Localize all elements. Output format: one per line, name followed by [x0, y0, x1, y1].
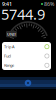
button[interactable]: Record: [22, 77, 34, 89]
staticText: Range: [4, 63, 14, 68]
staticText: Fuel: [4, 53, 11, 59]
staticText: 86%: [44, 0, 54, 8]
staticText: 5744.9: [1, 4, 45, 24]
staticText: Trip A: [4, 44, 15, 49]
staticText: UNIT: [7, 31, 16, 37]
staticText: 9:41: [2, 0, 12, 8]
button[interactable]: Fuel: [2, 51, 51, 61]
button[interactable]: Range: [2, 61, 51, 70]
button[interactable]: Trip A: [2, 42, 51, 51]
